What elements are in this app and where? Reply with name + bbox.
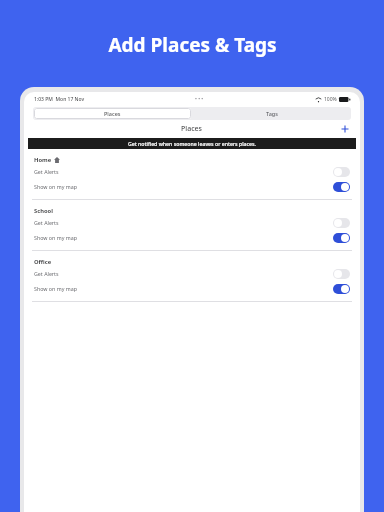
staticText: Office [34,258,52,266]
staticText: Show on my map [34,285,77,292]
staticText: 1:03 PM Mon 17 Nov [34,96,85,103]
button[interactable]: Show on my map [24,230,360,245]
button[interactable]: On [333,284,350,294]
button[interactable]: Off [333,218,350,228]
staticText: Get Alerts [34,219,59,226]
button[interactable]: Get Alerts [24,266,360,281]
staticText: Home [34,156,52,164]
staticText: Get notified when someone leaves or ente… [128,140,256,147]
staticText: • • • [195,96,204,103]
staticText: Places [104,110,121,117]
staticText: School [34,207,53,215]
button[interactable]: Show on my map [24,179,360,194]
staticText: Tags [266,110,278,117]
button[interactable]: Get Alerts [24,215,360,230]
staticText: Show on my map [34,234,77,241]
staticText: 100% [324,96,337,103]
button[interactable]: Show on my map [24,281,360,296]
button[interactable]: Off [333,167,350,177]
staticText: Get Alerts [34,270,59,277]
button[interactable]: Tags [192,107,351,120]
button[interactable]: On [333,233,350,243]
button[interactable]: On [333,182,350,192]
button[interactable]: Add place [338,122,352,136]
staticText: Show on my map [34,183,77,190]
staticText: Places [181,124,203,134]
staticText: Add Places & Tags [108,32,277,58]
staticText: Get Alerts [34,168,59,175]
button[interactable]: Off [333,269,350,279]
button[interactable]: Get Alerts [24,164,360,179]
button[interactable]: Places [34,108,191,119]
